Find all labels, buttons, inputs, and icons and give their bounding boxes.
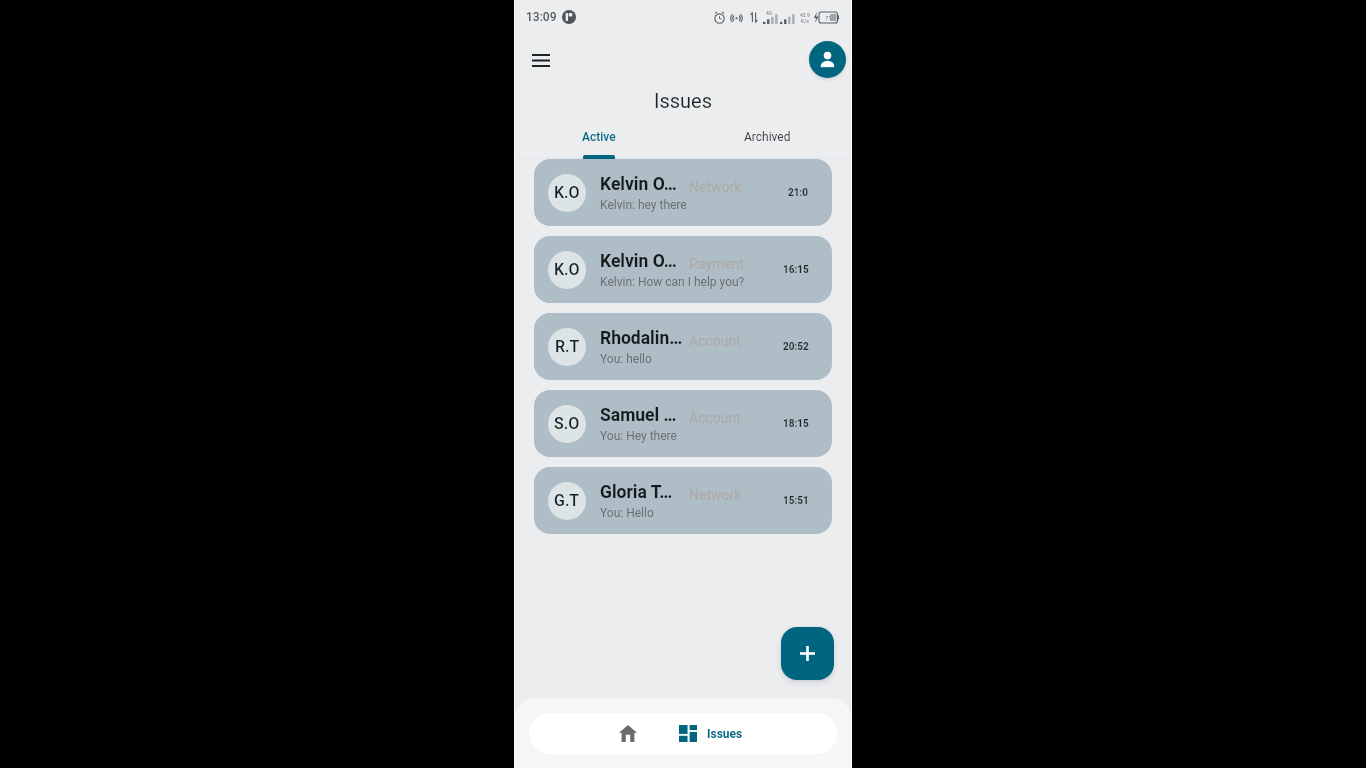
- staticText: You: Hey there: [600, 429, 677, 443]
- staticText: 4G: [766, 10, 773, 16]
- staticText: 15:51: [783, 495, 809, 507]
- button[interactable]: S.O: [534, 390, 832, 457]
- staticText: Issues: [654, 89, 713, 112]
- staticText: Kelvin: hey there: [600, 198, 687, 212]
- staticText: You: Hello: [600, 506, 654, 520]
- staticText: G.T: [554, 491, 580, 510]
- staticText: Network: [689, 179, 742, 195]
- staticText: Account: [689, 410, 741, 426]
- staticText: K.O: [554, 260, 580, 279]
- staticText: 18:15: [783, 418, 809, 430]
- button[interactable]: Profile: [809, 41, 846, 78]
- staticText: Active: [582, 130, 616, 144]
- staticText: S.O: [554, 414, 580, 433]
- staticText: Archived: [744, 130, 791, 144]
- button[interactable]: Menu: [523, 42, 559, 78]
- button[interactable]: G.T: [534, 467, 832, 534]
- button[interactable]: Issues: [679, 713, 743, 754]
- button[interactable]: Archived: [683, 118, 851, 155]
- staticText: Account: [689, 333, 741, 349]
- staticText: Kelvin O…: [600, 174, 677, 195]
- staticText: Samuel …: [600, 405, 677, 426]
- staticText: Rhodalin…: [600, 328, 683, 349]
- staticText: 16:15: [783, 264, 809, 276]
- staticText: 71: [825, 14, 832, 21]
- staticText: Kelvin: How can I help you?: [600, 275, 745, 289]
- button[interactable]: K.O: [534, 159, 832, 226]
- staticText: K/s: [801, 18, 809, 24]
- button[interactable]: Active: [515, 118, 683, 155]
- staticText: 20:52: [783, 341, 809, 353]
- staticText: Network: [689, 487, 742, 503]
- button[interactable]: Add issue: [781, 627, 834, 680]
- staticText: 13:09: [526, 10, 557, 24]
- staticText: Payment: [689, 256, 744, 272]
- staticText: Gloria T…: [600, 482, 673, 503]
- staticText: Issues: [707, 727, 743, 741]
- button[interactable]: R.T: [534, 313, 832, 380]
- staticText: R.T: [555, 337, 580, 356]
- staticText: 21:0: [788, 187, 809, 199]
- staticText: K.O: [554, 183, 580, 202]
- button[interactable]: K.O: [534, 236, 832, 303]
- button[interactable]: Home: [607, 713, 649, 754]
- staticText: You: hello: [600, 352, 652, 366]
- staticText: 43.9: [800, 12, 810, 18]
- staticText: Kelvin O…: [600, 251, 677, 272]
